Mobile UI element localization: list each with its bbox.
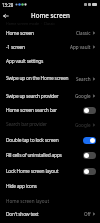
staticText: Search xyxy=(76,76,91,82)
staticText: -1 screen xyxy=(6,44,70,51)
staticText: Lock Home screen layout xyxy=(6,168,83,175)
button[interactable]: Off xyxy=(83,168,96,175)
button[interactable]: Off xyxy=(83,152,96,159)
button[interactable]: Off xyxy=(83,107,96,114)
staticText: Google xyxy=(75,93,91,99)
staticText: Off xyxy=(84,211,91,217)
staticText: Don't show text xyxy=(6,211,84,218)
button[interactable]: App vault settings xyxy=(0,54,100,68)
button[interactable]: Double tap to lock screen xyxy=(0,132,100,148)
button[interactable]: Home screen search bar xyxy=(0,103,100,117)
staticText: Search bar provider xyxy=(6,121,75,128)
button[interactable]: Search bar provider xyxy=(0,117,100,132)
button[interactable]: Home screen xyxy=(0,26,100,40)
staticText: Fill cells of uninstalled apps xyxy=(6,152,83,159)
staticText: App vault settings xyxy=(6,58,96,65)
staticText: 13:28 xyxy=(2,2,14,8)
button[interactable]: Swipe up on the Home screen xyxy=(0,68,100,89)
staticText: Classic xyxy=(76,30,91,36)
staticText: Home screen search bar xyxy=(6,107,83,114)
staticText: Home screen layout xyxy=(6,198,50,204)
staticText: Swipe up search provider xyxy=(6,93,75,100)
staticText: Home screen xyxy=(31,11,70,19)
button[interactable]: Fill cells of uninstalled apps xyxy=(0,148,100,163)
staticText: Home screen mode · Classic xyxy=(6,21,56,26)
button[interactable]: Back xyxy=(0,10,11,21)
button[interactable]: Swipe up search provider xyxy=(0,89,100,103)
button[interactable]: Hide app icons xyxy=(0,179,100,194)
button[interactable]: Don't show text xyxy=(0,207,100,221)
staticText: Home screen xyxy=(6,30,76,37)
button[interactable]: On xyxy=(83,137,96,144)
staticText: Hide app icons xyxy=(6,183,96,190)
button[interactable]: -1 screen xyxy=(0,40,100,54)
staticText: Swipe up on the Home screen xyxy=(6,75,76,82)
staticText: Double tap to lock screen xyxy=(6,137,83,144)
staticText: Google xyxy=(75,122,91,128)
button[interactable]: Lock Home screen layout xyxy=(0,163,100,179)
staticText: App vault xyxy=(70,44,91,50)
